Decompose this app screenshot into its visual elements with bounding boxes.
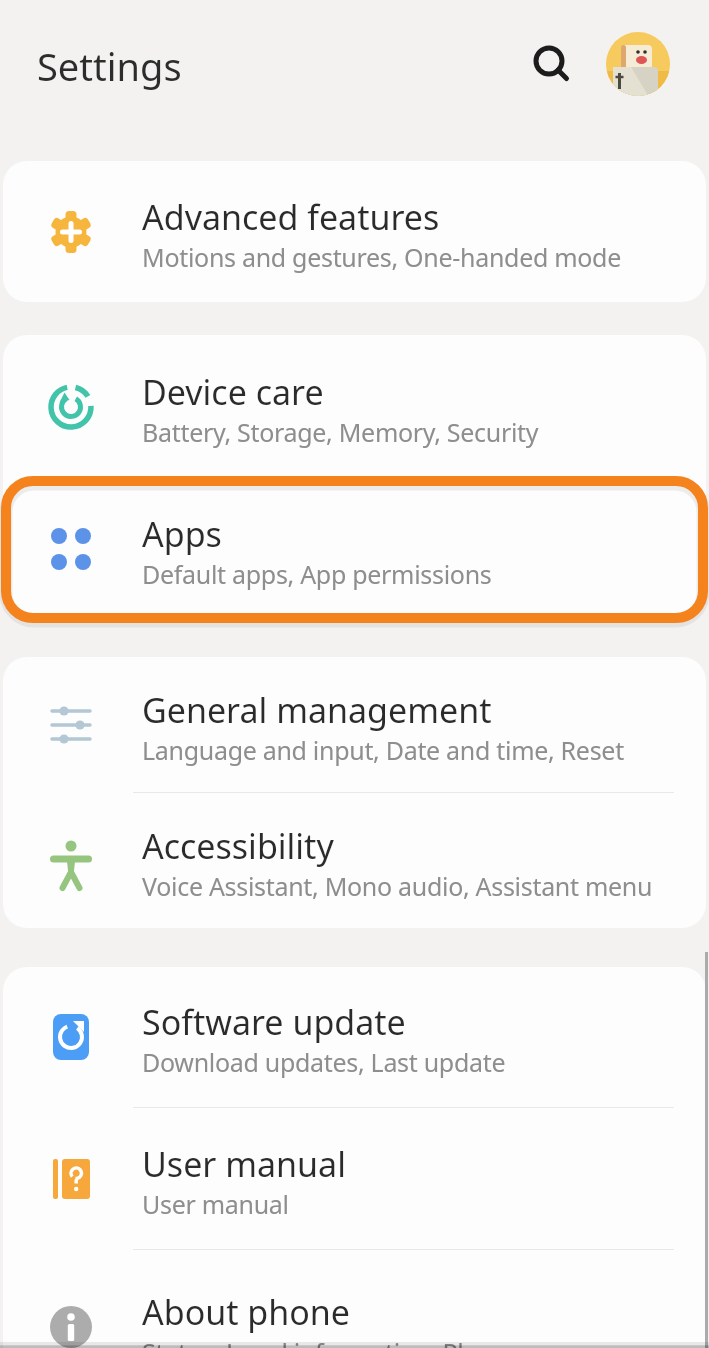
button[interactable]: About phone bbox=[3, 1250, 706, 1348]
staticText: About phone bbox=[142, 1289, 351, 1335]
button[interactable] bbox=[605, 31, 671, 97]
staticText: Default apps, App permissions bbox=[142, 557, 492, 591]
staticText: Download updates, Last update bbox=[142, 1045, 506, 1079]
button[interactable]: User manual bbox=[3, 1108, 706, 1249]
staticText: General management bbox=[142, 687, 492, 733]
staticText: Accessibility bbox=[142, 823, 334, 869]
button[interactable]: Device care bbox=[3, 335, 706, 478]
staticText: Motions and gestures, One-handed mode bbox=[142, 240, 621, 274]
staticText: Advanced features bbox=[142, 194, 440, 240]
staticText: Apps bbox=[142, 511, 222, 557]
staticText: Settings bbox=[37, 40, 182, 92]
button[interactable]: Accessibility bbox=[3, 793, 706, 928]
staticText: User manual bbox=[142, 1187, 289, 1221]
staticText: User manual bbox=[142, 1141, 346, 1187]
button[interactable]: Software update bbox=[3, 967, 706, 1107]
staticText: Software update bbox=[142, 999, 406, 1045]
staticText: Language and input, Date and time, Reset bbox=[142, 733, 624, 767]
staticText: Device care bbox=[142, 369, 324, 415]
staticText: Battery, Storage, Memory, Security bbox=[142, 415, 539, 449]
button[interactable]: Advanced features bbox=[3, 161, 706, 302]
button[interactable]: Apps bbox=[3, 478, 706, 620]
staticText: Voice Assistant, Mono audio, Assistant m… bbox=[142, 869, 653, 903]
button[interactable] bbox=[525, 37, 575, 87]
button[interactable]: General management bbox=[3, 657, 706, 792]
staticText: Status, Legal information, Phone bbox=[142, 1335, 517, 1348]
